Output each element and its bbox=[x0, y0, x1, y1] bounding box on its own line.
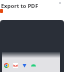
button[interactable]: Drive bbox=[22, 63, 27, 68]
button[interactable]: PDF document bbox=[0, 9, 3, 13]
button[interactable]: Chrome bbox=[4, 63, 9, 68]
button[interactable]: Gmail bbox=[13, 63, 18, 68]
button[interactable]: WhatsApp bbox=[31, 63, 36, 68]
staticText: Export to PDF bbox=[1, 2, 39, 9]
